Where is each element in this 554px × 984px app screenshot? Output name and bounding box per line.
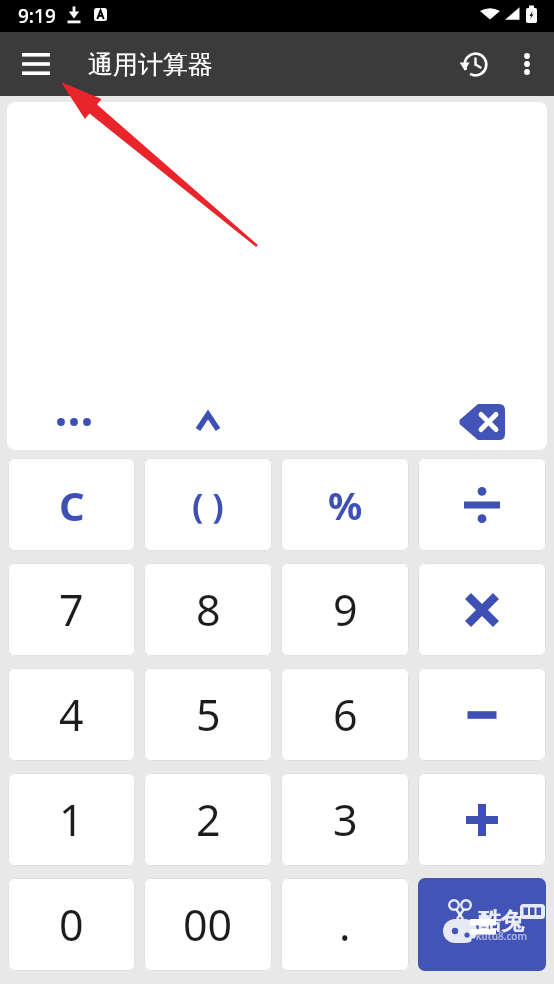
staticText: 7 bbox=[59, 580, 84, 639]
staticText: C bbox=[59, 478, 85, 532]
staticText: 5 bbox=[196, 685, 221, 744]
button[interactable] bbox=[454, 402, 508, 442]
staticText: 酷兔 bbox=[478, 907, 524, 936]
staticText: 3 bbox=[333, 790, 358, 849]
button[interactable] bbox=[47, 404, 101, 440]
button[interactable] bbox=[452, 41, 498, 87]
staticText: kutu8.com bbox=[476, 929, 527, 943]
staticText: 通用计算器 bbox=[88, 49, 213, 80]
button[interactable]: 0 bbox=[8, 878, 135, 971]
button[interactable]: 3 bbox=[281, 773, 409, 866]
button[interactable]: 9 bbox=[281, 563, 409, 656]
button[interactable]: C bbox=[8, 458, 135, 551]
button[interactable] bbox=[418, 563, 546, 656]
button[interactable]: ( ) bbox=[144, 458, 272, 551]
staticText: ( ) bbox=[192, 482, 224, 528]
button[interactable] bbox=[180, 404, 236, 440]
button[interactable]: 7 bbox=[8, 563, 135, 656]
button[interactable] bbox=[418, 458, 546, 551]
staticText: 4 bbox=[59, 685, 84, 744]
staticText: % bbox=[328, 479, 363, 531]
staticText: 6 bbox=[333, 685, 358, 744]
button[interactable]: 4 bbox=[8, 668, 135, 761]
button[interactable]: 酷兔 bbox=[418, 878, 546, 971]
button[interactable] bbox=[418, 668, 546, 761]
button[interactable]: 6 bbox=[281, 668, 409, 761]
button[interactable]: 8 bbox=[144, 563, 272, 656]
button[interactable]: . bbox=[281, 878, 409, 971]
staticText: 8 bbox=[196, 580, 221, 639]
staticText: 9 bbox=[333, 580, 358, 639]
staticText: 9:19 bbox=[18, 3, 56, 29]
button[interactable]: 1 bbox=[8, 773, 135, 866]
staticText: 00 bbox=[183, 895, 233, 954]
button[interactable]: 5 bbox=[144, 668, 272, 761]
button[interactable]: % bbox=[281, 458, 409, 551]
staticText: . bbox=[339, 895, 351, 954]
button[interactable]: 2 bbox=[144, 773, 272, 866]
button[interactable] bbox=[418, 773, 546, 866]
staticText: 1 bbox=[59, 790, 84, 849]
button[interactable]: 00 bbox=[144, 878, 272, 971]
staticText: 0 bbox=[59, 895, 84, 954]
button[interactable] bbox=[506, 43, 548, 85]
button[interactable] bbox=[12, 40, 60, 88]
staticText: 2 bbox=[196, 790, 221, 849]
